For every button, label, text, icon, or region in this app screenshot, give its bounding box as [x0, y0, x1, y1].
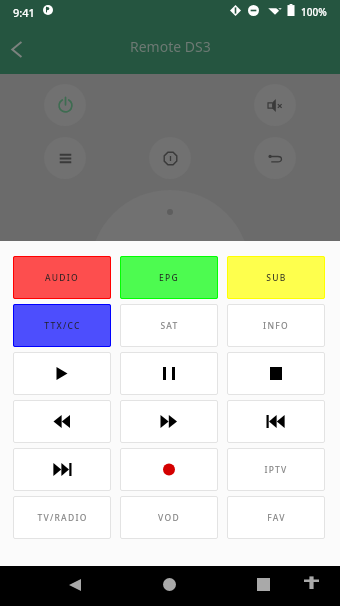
staticText: TV/RADIO: [37, 512, 88, 524]
staticText: 100%: [301, 5, 327, 19]
button[interactable]: Control: [227, 352, 325, 395]
button[interactable]: AUDIO: [13, 256, 111, 299]
button[interactable]: Back: [58, 568, 91, 601]
button[interactable]: Control: [120, 400, 218, 443]
button[interactable]: Control: [120, 352, 218, 395]
button[interactable]: SUB: [227, 256, 325, 299]
staticText: INFO: [263, 320, 289, 332]
staticText: SAT: [160, 320, 179, 332]
button[interactable]: Switch keyboard: [297, 568, 325, 596]
button[interactable]: Home: [153, 568, 186, 601]
button[interactable]: EPG: [120, 256, 218, 299]
button[interactable]: Control: [13, 448, 111, 491]
staticText: SUB: [266, 272, 287, 284]
button[interactable]: Power: [44, 84, 86, 126]
button[interactable]: Control: [120, 448, 218, 491]
button[interactable]: VOD: [120, 496, 218, 539]
staticText: Remote DS3: [130, 37, 211, 56]
staticText: TTX/CC: [44, 320, 81, 332]
button[interactable]: INFO: [227, 304, 325, 347]
button[interactable]: IPTV: [227, 448, 325, 491]
button[interactable]: Return: [254, 137, 296, 179]
staticText: IPTV: [264, 464, 288, 476]
button[interactable]: Control: [227, 400, 325, 443]
button[interactable]: Mute: [254, 84, 296, 126]
button[interactable]: Control: [13, 352, 111, 395]
button[interactable]: TV/RADIO: [13, 496, 111, 539]
staticText: 9:41: [13, 5, 35, 20]
button[interactable]: SAT: [120, 304, 218, 347]
staticText: FAV: [267, 512, 286, 524]
button[interactable]: Menu: [44, 137, 86, 179]
button[interactable]: FAV: [227, 496, 325, 539]
button[interactable]: Back: [0, 29, 36, 69]
button[interactable]: TTX/CC: [13, 304, 111, 347]
button[interactable]: Control: [13, 400, 111, 443]
button[interactable]: Info: [149, 137, 191, 179]
staticText: VOD: [158, 512, 180, 524]
button[interactable]: Recent apps: [247, 568, 280, 601]
staticText: EPG: [159, 272, 179, 284]
staticText: AUDIO: [45, 272, 79, 284]
